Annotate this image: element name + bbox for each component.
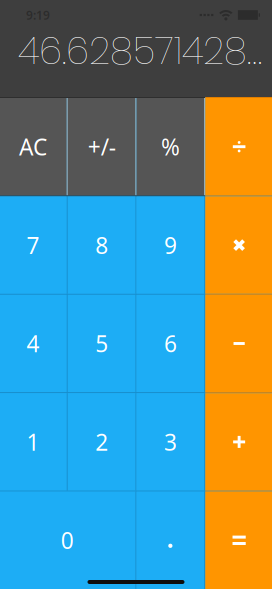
staticText: 5: [95, 328, 108, 358]
button[interactable]: 0: [0, 492, 135, 589]
button[interactable]: 7: [0, 196, 67, 294]
button[interactable]: Equals: [205, 492, 272, 589]
staticText: 0: [61, 525, 74, 555]
button[interactable]: 5: [68, 295, 136, 392]
button[interactable]: 2: [68, 393, 136, 491]
button[interactable]: %: [136, 98, 204, 195]
button[interactable]: Minus: [205, 295, 272, 392]
button[interactable]: Decimal point: [136, 492, 204, 589]
staticText: 9: [164, 230, 177, 260]
staticText: 7: [26, 230, 39, 260]
button[interactable]: 4: [0, 295, 67, 392]
staticText: %: [161, 132, 180, 162]
button[interactable]: +/-: [68, 98, 136, 195]
button[interactable]: Multiply: [205, 196, 272, 294]
button[interactable]: 8: [68, 196, 136, 294]
staticText: 4: [26, 328, 39, 358]
staticText: +/-: [88, 132, 116, 162]
button[interactable]: 1: [0, 393, 67, 491]
staticText: 2: [95, 427, 108, 457]
button[interactable]: Divide: [205, 98, 272, 195]
button[interactable]: 6: [136, 295, 204, 392]
button[interactable]: 3: [136, 393, 204, 491]
staticText: 46.628571428…: [18, 25, 262, 77]
staticText: 3: [164, 427, 177, 457]
staticText: 8: [95, 230, 108, 260]
staticText: 6: [164, 328, 177, 358]
staticText: 9:19: [26, 7, 50, 23]
staticText: 1: [26, 427, 39, 457]
button[interactable]: AC: [0, 98, 67, 195]
button[interactable]: 9: [136, 196, 204, 294]
staticText: AC: [19, 132, 47, 162]
button[interactable]: Plus: [205, 393, 272, 491]
